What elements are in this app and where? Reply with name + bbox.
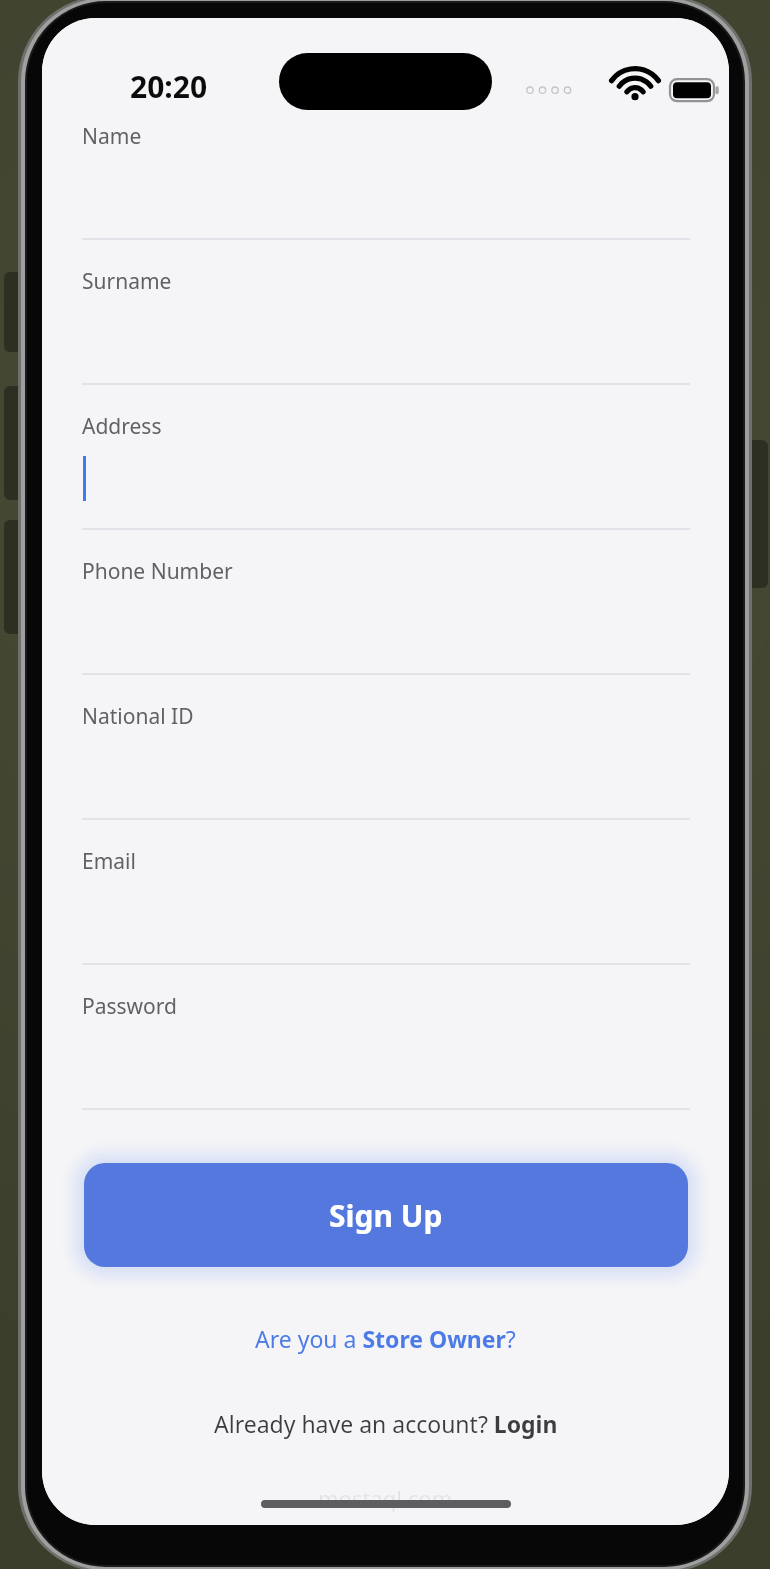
staticText: Name: [82, 122, 142, 151]
button[interactable]: Are you a Store Owner?: [42, 1310, 729, 1366]
button[interactable]: Sign Up: [84, 1163, 688, 1267]
staticText: National ID: [82, 702, 194, 731]
staticText: 20:20: [130, 66, 208, 107]
staticText: Surname: [82, 267, 172, 296]
staticText: Phone Number: [82, 557, 233, 586]
staticText: Are you a Store Owner?: [255, 1323, 516, 1354]
staticText: Sign Up: [329, 1195, 443, 1236]
button[interactable]: Password: [82, 982, 690, 1127]
button[interactable]: Surname: [82, 257, 690, 402]
staticText: Address: [82, 412, 162, 441]
other: Status indicators: [522, 66, 702, 110]
button[interactable]: Email: [82, 837, 690, 982]
button[interactable]: Already have an account? Login: [42, 1395, 729, 1451]
button[interactable]: Phone Number: [82, 547, 690, 692]
staticText: Already have an account? Login: [214, 1408, 558, 1439]
staticText: Password: [82, 992, 177, 1021]
staticText: Email: [82, 847, 136, 876]
staticText: mostaql.com: [318, 1483, 453, 1513]
button[interactable]: Address: [82, 402, 690, 547]
button[interactable]: National ID: [82, 692, 690, 837]
button[interactable]: Name: [82, 112, 690, 257]
